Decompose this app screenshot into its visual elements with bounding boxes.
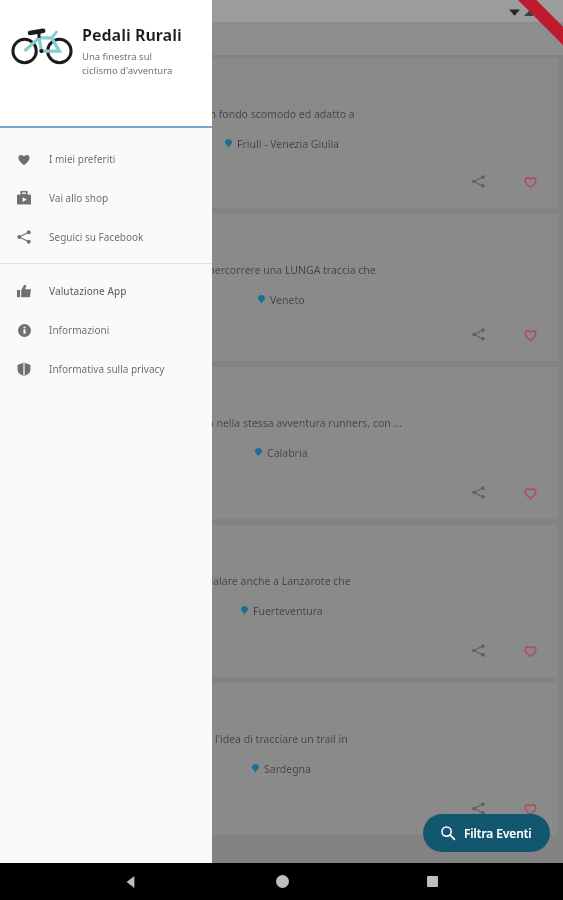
staticText: Informativa sulla privacy [49,362,165,376]
button[interactable]: Seguici su Facebook [0,217,212,256]
button[interactable]: Preferito [515,319,545,349]
staticText: limitato numero di fatbikers – Si dovrà … [18,263,376,277]
button[interactable]: Nordest Gravel [5,58,558,208]
button[interactable]: Preferito [515,793,545,823]
button[interactable]: Indietro [111,863,151,900]
staticText: Filtra Eventi [464,825,532,841]
button[interactable]: Condividi [463,477,493,507]
staticText: 2020, ora ci allarghiamo andando a pedal… [18,574,351,588]
button[interactable]: Valutazione App [0,271,212,310]
staticText: continuo alternarsi di paesaggi e con un… [18,107,355,121]
button[interactable]: Filtra Eventi [423,814,550,852]
staticText: Una finestra sul [82,50,152,63]
button[interactable]: Condividi [463,793,493,823]
staticText: Calabria [267,446,308,460]
staticText: Nordest Gravel [18,70,112,87]
button[interactable]: Condividi [463,319,493,349]
staticText: Fatbike Winter [18,226,111,243]
button[interactable]: I miei preferiti [0,139,212,178]
staticText: Vai allo shop [49,191,109,205]
button[interactable]: Home [262,863,302,900]
staticText: Sardegna [264,762,311,776]
button[interactable]: Informazioni [0,310,212,349]
staticText: Informazioni [49,323,110,337]
staticText: Friuli - Venezia Giulia [237,137,339,151]
button[interactable]: Preferito [515,477,545,507]
button[interactable]: Informativa sulla privacy [0,349,212,388]
button[interactable]: Preferito [515,166,545,196]
button[interactable]: Vai allo shop [0,178,212,217]
staticText: Fuerteventura [253,604,323,618]
button[interactable]: Calabria Extreme [5,367,558,519]
button[interactable]: App recenti [412,863,452,900]
staticText: Valutazione App [49,284,127,298]
staticText: Eventi [16,29,60,48]
button[interactable]: Preferito [515,635,545,665]
staticText: Veneto [270,293,305,307]
button[interactable]: Condividi [463,166,493,196]
staticText: Seguici su Facebook [49,230,144,244]
staticText: unico. Semplicemente da questo è nata l'… [18,732,348,746]
button[interactable]: Lanzarote Bike Trail 2021 [5,525,558,677]
button[interactable]: Sardegna [5,683,558,835]
button[interactable]: Condividi [463,635,493,665]
staticText: stile delle sfide dei grandi Nord. Assoc… [18,416,402,430]
staticText: I miei preferiti [49,152,116,166]
staticText: Pedali Rurali [82,24,182,46]
button[interactable]: Fatbike Winter [5,214,558,361]
staticText: ciclismo d'avventura [82,64,173,77]
